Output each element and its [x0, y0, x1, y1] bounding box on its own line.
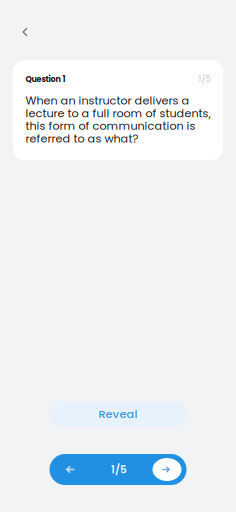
staticText: Reveal [98, 406, 137, 422]
staticText: 1/5 [111, 462, 127, 477]
button[interactable]: Next question [152, 458, 181, 481]
button[interactable]: Previous question [55, 454, 85, 484]
button[interactable]: Reveal [49, 401, 186, 427]
staticText: When an instructor delivers a lecture to… [25, 94, 210, 145]
button[interactable]: Back [12, 19, 38, 45]
staticText: 1/5 [198, 73, 210, 85]
staticText: Question 1 [25, 73, 65, 85]
